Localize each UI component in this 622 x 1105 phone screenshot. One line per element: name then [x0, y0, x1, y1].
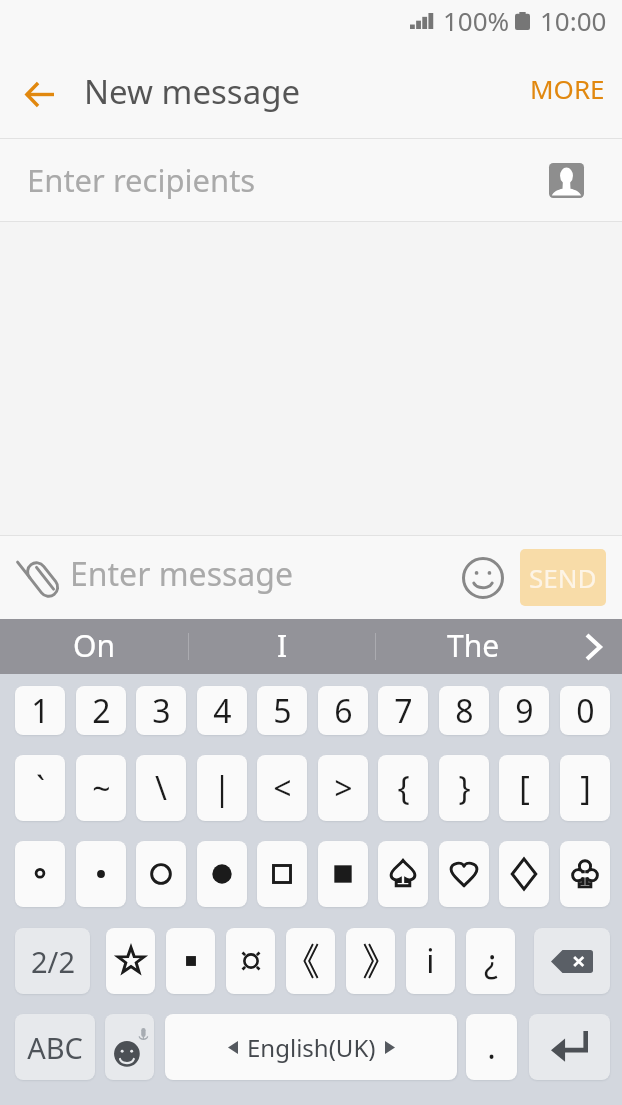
button[interactable]: 5 — [257, 686, 307, 735]
staticText: New message — [84, 69, 301, 114]
staticText: ~ — [92, 766, 111, 810]
button[interactable]: } — [439, 755, 489, 821]
button[interactable]: Navigate up — [8, 63, 70, 125]
staticText: } — [458, 766, 471, 810]
button[interactable]: MORE — [510, 51, 622, 126]
button[interactable]: Show more suggestions — [570, 619, 622, 674]
button[interactable] — [318, 841, 368, 907]
staticText: Enter message — [70, 552, 294, 596]
staticText: 5 — [273, 689, 292, 733]
staticText: < — [273, 766, 292, 810]
button[interactable]: Enter recipients — [0, 139, 622, 221]
button[interactable] — [15, 841, 65, 907]
button[interactable] — [560, 841, 610, 907]
button[interactable] — [499, 841, 549, 907]
button[interactable]: On — [0, 619, 188, 674]
button[interactable]: . — [466, 1014, 517, 1080]
staticText: 6 — [334, 689, 353, 733]
staticText: | — [213, 766, 231, 810]
button[interactable]: ] — [560, 755, 610, 821]
button[interactable]: 7 — [378, 686, 428, 735]
staticText: English(UK) — [247, 1031, 376, 1064]
staticText: ` — [36, 766, 45, 810]
staticText: On — [73, 625, 115, 666]
button[interactable] — [197, 841, 247, 907]
staticText: The — [447, 625, 500, 666]
staticText: I — [277, 625, 288, 666]
button[interactable]: SEND — [520, 549, 606, 606]
staticText: ¿ — [484, 939, 498, 983]
staticText: i — [426, 939, 435, 983]
button[interactable]: 0 — [560, 686, 610, 735]
staticText: 8 — [455, 689, 474, 733]
button[interactable]: { — [378, 755, 428, 821]
button[interactable]: ` — [15, 755, 65, 821]
staticText: ABC — [27, 1028, 83, 1067]
button[interactable] — [166, 928, 215, 994]
button[interactable]: < — [257, 755, 307, 821]
button[interactable]: > — [318, 755, 368, 821]
staticText: \ — [155, 766, 167, 810]
button[interactable]: Add recipients — [549, 163, 584, 198]
button[interactable]: ¿ — [466, 928, 515, 994]
button[interactable]: [ — [499, 755, 549, 821]
staticText: { — [397, 766, 410, 810]
button[interactable] — [286, 928, 335, 994]
button[interactable] — [226, 928, 275, 994]
staticText: 0 — [576, 689, 595, 733]
button[interactable]: 2 — [76, 686, 126, 735]
button[interactable]: Insert emoticon — [462, 557, 504, 599]
button[interactable] — [76, 841, 126, 907]
staticText: 100% — [443, 3, 510, 38]
button[interactable]: | — [197, 755, 247, 821]
staticText: 9 — [515, 689, 534, 733]
button[interactable]: I — [189, 619, 375, 674]
staticText: 7 — [394, 689, 413, 733]
button[interactable]: 6 — [318, 686, 368, 735]
staticText: 2/2 — [31, 942, 75, 981]
button[interactable]: ABC — [15, 1014, 95, 1080]
button[interactable]: 9 — [499, 686, 549, 735]
staticText: 1 — [31, 689, 50, 733]
button[interactable]: Attach file — [16, 552, 68, 604]
staticText: 3 — [152, 689, 171, 733]
staticText: ] — [580, 766, 591, 810]
staticText: MORE — [530, 71, 605, 106]
staticText: . — [487, 1025, 496, 1069]
staticText: > — [334, 766, 353, 810]
button[interactable]: i — [406, 928, 455, 994]
button[interactable]: 3 — [136, 686, 186, 735]
button[interactable]: Enter — [529, 1014, 610, 1080]
staticText: [ — [519, 766, 530, 810]
staticText: 2 — [92, 689, 111, 733]
button[interactable] — [378, 841, 428, 907]
staticText: 4 — [213, 689, 232, 733]
staticText: 10:00 — [540, 3, 607, 38]
button[interactable]: 2/2 — [15, 928, 90, 994]
button[interactable] — [257, 841, 307, 907]
button[interactable]: Emoji and voice input — [105, 1014, 154, 1080]
button[interactable]: The — [376, 619, 570, 674]
button[interactable]: 8 — [439, 686, 489, 735]
button[interactable] — [106, 928, 155, 994]
button[interactable] — [439, 841, 489, 907]
button[interactable]: 4 — [197, 686, 247, 735]
button[interactable]: Delete — [534, 928, 610, 994]
button[interactable]: 1 — [15, 686, 65, 735]
button[interactable] — [136, 841, 186, 907]
button[interactable]: \ — [136, 755, 186, 821]
button[interactable] — [346, 928, 395, 994]
staticText: SEND — [529, 560, 597, 595]
button[interactable]: Space — [165, 1014, 457, 1080]
button[interactable]: ~ — [76, 755, 126, 821]
staticText: Enter recipients — [27, 159, 256, 201]
